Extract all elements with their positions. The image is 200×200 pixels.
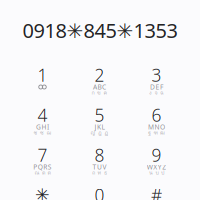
staticText: 2 [94,63,104,86]
staticText: ฐ ฑ ฒ [148,128,165,137]
staticText: น บ ป [149,168,164,177]
staticText: DEF [150,83,163,91]
staticText: 4 [37,103,47,126]
staticText: PQRS [33,163,52,171]
staticText: ณ ด ต [34,168,51,177]
staticText: 1 [37,63,47,86]
staticText: ง จ ฉ [149,88,164,97]
staticText: TUV [92,163,107,171]
staticText: # [151,183,162,200]
button[interactable]: 3 [128,66,185,106]
staticText: 6 [151,103,161,126]
staticText: ✳ [35,185,50,200]
button[interactable]: 8 [71,146,128,186]
staticText: 5 [94,103,104,126]
button[interactable]: 7 [14,146,71,186]
staticText: GHI [36,123,49,131]
staticText: 7 [37,143,47,166]
staticText: 0918✳845✳1353 [22,17,177,44]
staticText: 9 [151,143,161,166]
button[interactable]: 2 [71,66,128,106]
button[interactable]: 6 [128,106,185,146]
staticText: 8 [94,143,104,166]
button[interactable]: # [128,186,185,200]
button[interactable]: ✳ [14,186,71,200]
staticText: 3 [151,63,161,86]
staticText: WXYZ [147,163,166,171]
staticText: ABC [93,83,106,91]
staticText: ก ข ค [91,88,108,97]
staticText: 0 [94,183,104,200]
button[interactable]: 1 [14,66,71,106]
staticText: ช ซ ฌ [33,128,52,137]
button[interactable]: 0 [71,186,128,200]
staticText: ญ ฎ ฏ [90,128,109,137]
staticText: JKL [94,123,105,131]
staticText: MNO [148,123,165,131]
button[interactable]: 4 [14,106,71,146]
button[interactable]: 5 [71,106,128,146]
button[interactable]: 9 [128,146,185,186]
staticText: ถ ท ธ [92,168,107,177]
